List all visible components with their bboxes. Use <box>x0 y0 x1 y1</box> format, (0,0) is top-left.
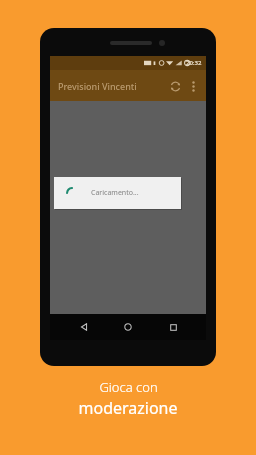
button[interactable]: More options <box>185 78 201 94</box>
staticText: Previsioni Vincenti <box>58 80 137 92</box>
staticText: moderazione <box>78 397 178 419</box>
staticText: 20:32 <box>186 59 202 67</box>
button[interactable]: Recents <box>162 316 184 338</box>
button[interactable]: Refresh <box>165 76 185 96</box>
button[interactable]: Back <box>73 316 95 338</box>
staticText: Gioca con <box>99 378 158 396</box>
button[interactable]: Home <box>117 316 139 338</box>
staticText: Caricamento... <box>91 188 139 198</box>
